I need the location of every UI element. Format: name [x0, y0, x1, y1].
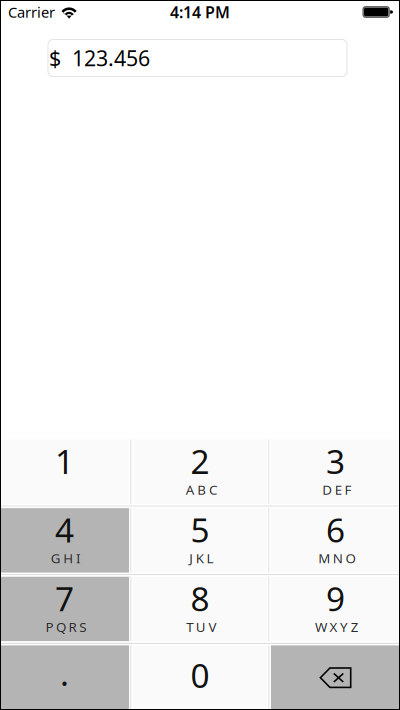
staticText: 7 — [55, 576, 74, 620]
button[interactable]: 2 — [133, 439, 267, 504]
staticText: WXYZ — [315, 618, 359, 636]
staticText: JKL — [189, 549, 213, 567]
button[interactable]: 9 — [271, 577, 400, 641]
button[interactable]: 5 — [133, 508, 267, 573]
staticText: 8 — [190, 576, 209, 620]
staticText: 0 — [190, 653, 209, 697]
staticText: PQRS — [45, 618, 86, 636]
staticText: 1 — [55, 439, 74, 483]
button[interactable]: $ — [48, 39, 347, 76]
button[interactable]: 1 — [0, 439, 129, 504]
staticText: TUV — [186, 618, 216, 636]
button[interactable]: 4 — [0, 508, 129, 573]
staticText: . — [60, 651, 69, 695]
staticText: GHI — [51, 549, 81, 567]
staticText: 6 — [326, 507, 345, 552]
button[interactable]: 0 — [133, 645, 267, 710]
staticText: ABC — [186, 481, 217, 498]
staticText: 2 — [190, 439, 209, 483]
staticText: DEF — [322, 481, 351, 498]
button[interactable]: 6 — [271, 508, 400, 573]
staticText: 5 — [190, 507, 209, 552]
button[interactable]: . — [0, 645, 129, 710]
staticText: 3 — [326, 439, 345, 483]
staticText: 4:14 PM — [170, 1, 230, 23]
button[interactable]: 8 — [133, 577, 267, 641]
staticText: MNO — [318, 549, 355, 567]
staticText: Carrier — [8, 2, 55, 22]
staticText: $ — [49, 44, 61, 72]
button[interactable]: Delete — [271, 645, 400, 710]
staticText: 9 — [326, 576, 345, 620]
staticText: 4 — [55, 507, 74, 552]
button[interactable]: 3 — [271, 439, 400, 504]
button[interactable]: 7 — [0, 577, 129, 641]
staticText: 123.456 — [72, 44, 150, 72]
